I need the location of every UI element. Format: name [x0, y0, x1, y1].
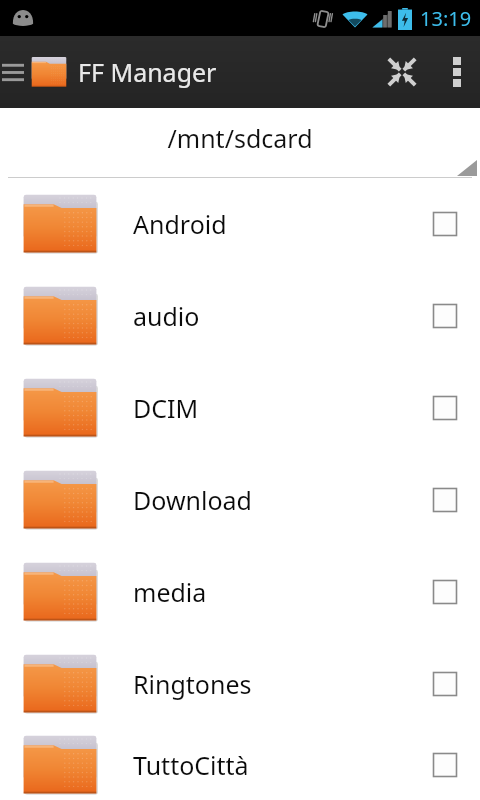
staticText: /mnt/sdcard [167, 121, 313, 155]
staticText: 13:19 [420, 5, 472, 32]
staticText: Ringtones [133, 667, 418, 701]
staticText: Android [133, 207, 418, 241]
button[interactable]: Ringtones [0, 638, 480, 730]
button[interactable]: More options [434, 36, 480, 108]
button[interactable]: Select Ringtones [418, 650, 472, 718]
button[interactable]: TuttoCittà [0, 730, 480, 800]
button[interactable]: Select audio [418, 282, 472, 350]
button[interactable]: Select DCIM [418, 374, 472, 442]
button[interactable]: Select Android [418, 190, 472, 258]
button[interactable]: Collapse all [370, 36, 434, 108]
button[interactable]: /mnt/sdcard [0, 108, 480, 178]
button[interactable]: Download [0, 454, 480, 546]
button[interactable]: media [0, 546, 480, 638]
button[interactable]: DCIM [0, 362, 480, 454]
staticText: DCIM [133, 391, 418, 425]
staticText: Download [133, 483, 418, 517]
staticText: FF Manager [78, 55, 217, 89]
button[interactable]: audio [0, 270, 480, 362]
button[interactable]: Android [0, 178, 480, 270]
button[interactable]: Select media [418, 558, 472, 626]
button[interactable]: Select TuttoCittà [418, 731, 472, 799]
staticText: TuttoCittà [133, 748, 418, 782]
button[interactable]: Select Download [418, 466, 472, 534]
staticText: audio [133, 299, 418, 333]
button[interactable]: FF Manager [0, 36, 217, 108]
staticText: media [133, 575, 418, 609]
